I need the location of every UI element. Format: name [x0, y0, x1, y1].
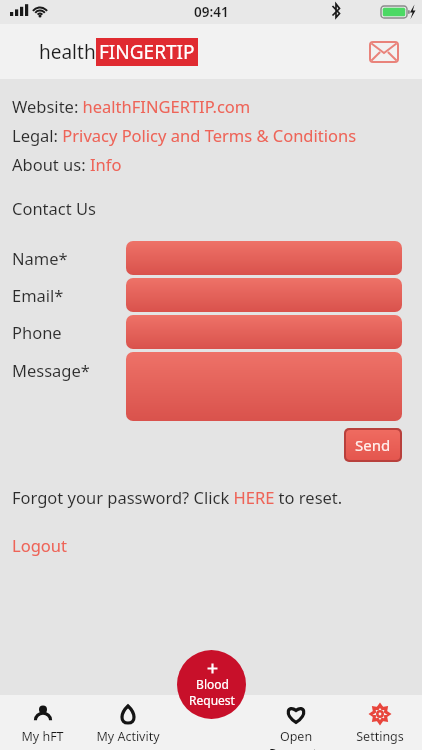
staticText: Phone: [12, 321, 62, 343]
staticText: health: [39, 39, 96, 65]
staticText: 09:41: [194, 3, 229, 21]
button[interactable]: [126, 278, 402, 312]
staticText: Send: [355, 435, 391, 455]
button[interactable]: Messages: [364, 32, 404, 72]
staticText: Request: [189, 692, 235, 708]
button[interactable]: Open Requests: [254, 695, 338, 750]
button[interactable]: Send: [346, 430, 400, 460]
button[interactable]: Website: healthFINGERTIP.com: [12, 95, 251, 117]
button[interactable]: [126, 241, 402, 275]
button[interactable]: My hFT: [0, 695, 85, 745]
staticText: Email*: [12, 284, 64, 306]
button[interactable]: Logout: [12, 534, 67, 556]
staticText: My hFT: [21, 728, 64, 745]
button[interactable]: My Activity: [85, 695, 170, 745]
staticText: Blood: [196, 676, 229, 692]
staticText: Open Requests: [254, 728, 338, 750]
button[interactable]: Settings: [338, 695, 422, 745]
button[interactable]: [126, 352, 402, 421]
button[interactable]: About us: Info: [12, 153, 122, 175]
staticText: My Activity: [96, 728, 160, 745]
staticText: Contact Us: [12, 197, 96, 219]
button[interactable]: Blood Request: [177, 650, 246, 719]
staticText: Settings: [356, 728, 404, 745]
staticText: FINGERTIP: [99, 39, 195, 65]
staticText: Name*: [12, 247, 68, 269]
button[interactable]: Forgot your password? Click HERE to rese…: [12, 486, 343, 508]
button[interactable]: Legal: Privacy Policy and Terms & Condit…: [12, 124, 357, 146]
button[interactable]: [126, 315, 402, 349]
staticText: Message*: [12, 359, 90, 381]
